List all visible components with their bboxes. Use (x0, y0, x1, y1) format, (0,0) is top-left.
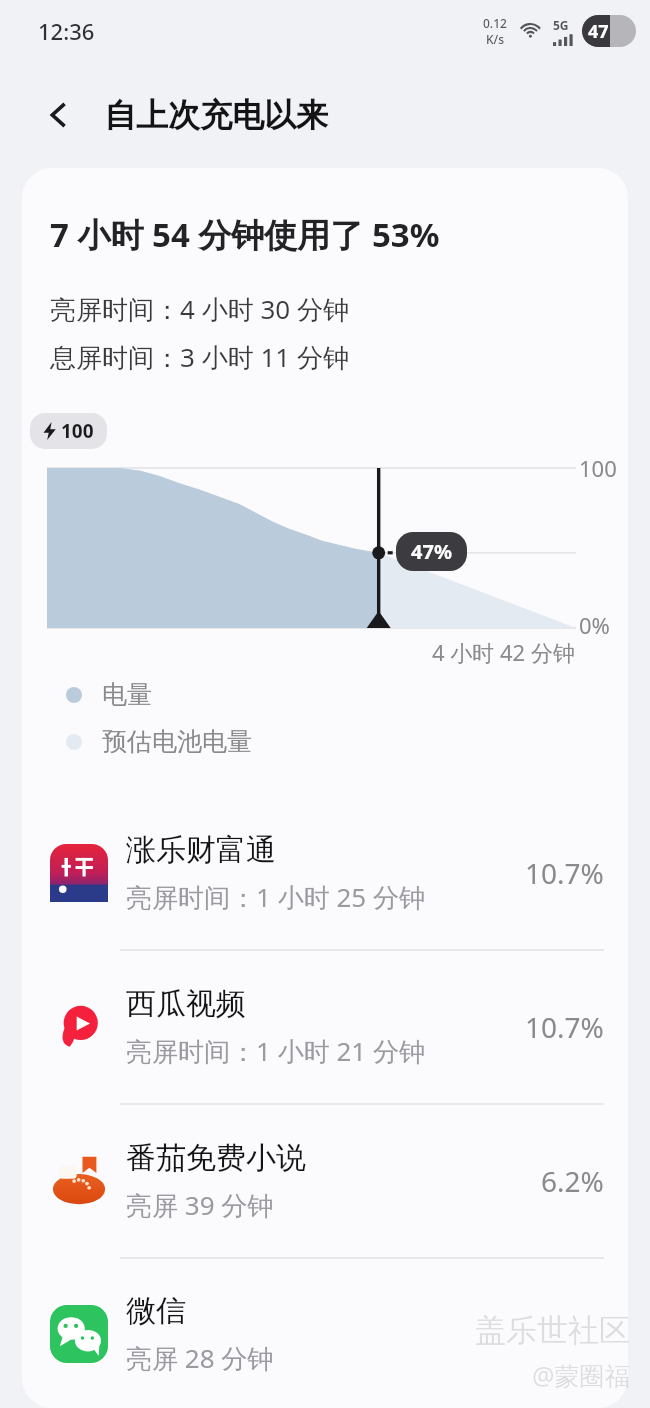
staticText: 10.7% (525, 1008, 604, 1046)
staticText: 100 (61, 418, 94, 444)
staticText: 6.2% (541, 1162, 604, 1200)
button[interactable]: 微信 (22, 1259, 628, 1408)
staticText: 5G (553, 17, 569, 33)
staticText: 0% (579, 610, 610, 640)
staticText: 番茄免费小说 (126, 1139, 306, 1177)
staticText: 0.12 (483, 15, 507, 31)
staticText: 亮屏 39 分钟 (126, 1187, 274, 1223)
staticText: 47% (411, 538, 452, 565)
staticText: 电量 (102, 679, 152, 710)
staticText: 7 小时 54 分钟使用了 53% (50, 212, 440, 257)
staticText: 息屏时间：3 小时 11 分钟 (50, 339, 349, 375)
staticText: 100 (579, 453, 617, 483)
staticText: 亮屏时间：1 小时 21 分钟 (126, 1033, 425, 1069)
staticText: 10.7% (525, 854, 604, 892)
button[interactable]: 涨乐财富通 (22, 797, 628, 949)
button[interactable]: 西瓜视频 (22, 951, 628, 1103)
staticText: @蒙圈福 (532, 1358, 630, 1392)
staticText: K/s (486, 31, 505, 47)
staticText: 西瓜视频 (126, 985, 246, 1023)
staticText: 预估电池电量 (102, 726, 252, 757)
staticText: 微信 (126, 1292, 186, 1330)
button[interactable]: Back (34, 90, 84, 140)
staticText: 涨乐财富通 (126, 831, 276, 869)
staticText: 亮屏 28 分钟 (126, 1340, 274, 1376)
staticText: 4 小时 42 分钟 (432, 637, 575, 667)
staticText: 47 (588, 19, 609, 44)
button[interactable]: 番茄免费小说 (22, 1105, 628, 1257)
staticText: 12:36 (38, 16, 95, 46)
staticText: 亮屏时间：4 小时 30 分钟 (50, 291, 349, 327)
staticText: 自上次充电以来 (104, 95, 328, 135)
staticText: 盖乐世社区 (475, 1311, 630, 1350)
staticText: 亮屏时间：1 小时 25 分钟 (126, 879, 425, 915)
